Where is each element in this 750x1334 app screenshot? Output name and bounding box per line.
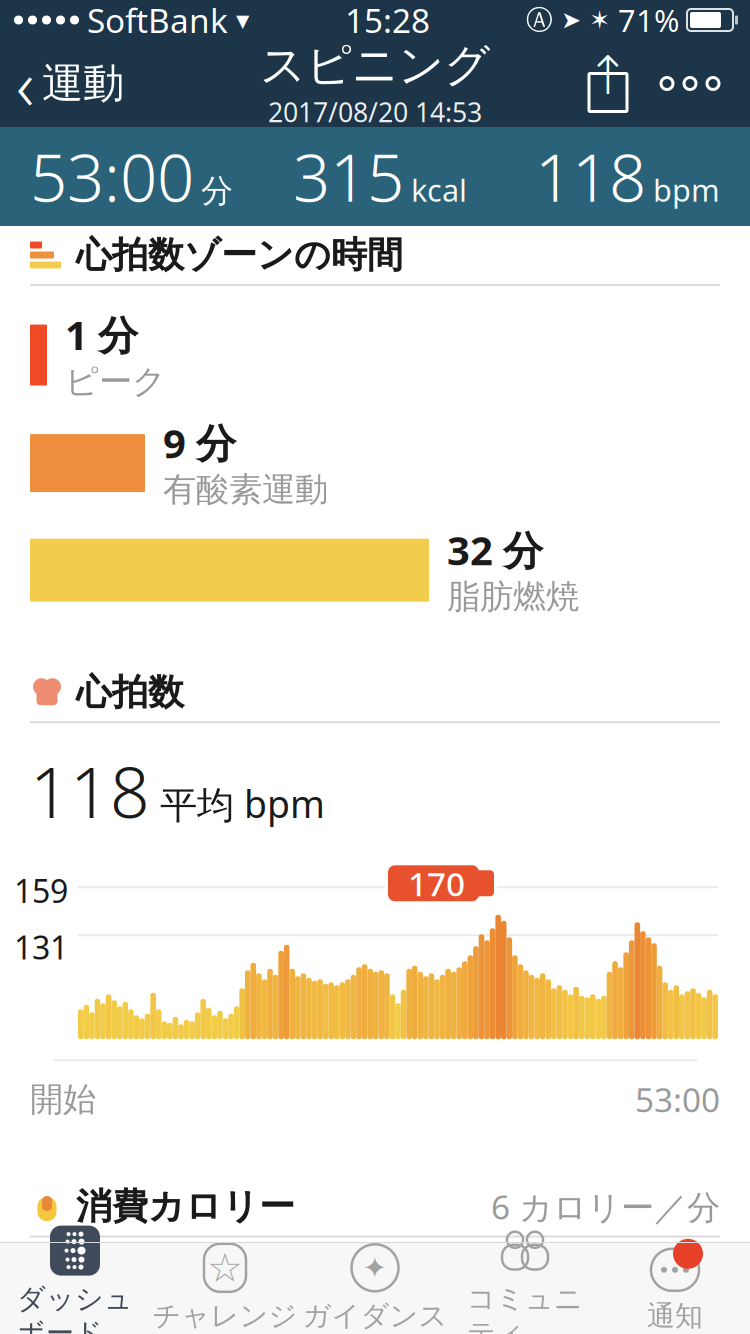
staticText: コミュニティ (467, 1282, 583, 1334)
staticText: bpm (653, 170, 720, 210)
staticText: 32 分 (447, 523, 543, 576)
button[interactable]: 共有 (578, 51, 638, 115)
staticText: 心拍数 (76, 670, 184, 714)
staticText: スピニング (260, 37, 490, 93)
staticText: 6 カロリー／分 (491, 1184, 720, 1229)
staticText: 71% (618, 0, 679, 40)
staticText: 平均 (160, 783, 234, 829)
staticText: 118 (535, 133, 646, 220)
staticText: ガイダンス (302, 1299, 447, 1333)
staticText: 2017/08/20 14:53 (268, 94, 482, 129)
button[interactable]: ‹ (0, 27, 124, 140)
staticText: kcal (411, 170, 467, 210)
staticText: 消費カロリー (76, 1184, 295, 1229)
staticText: 心拍数ゾーンの時間 (76, 233, 403, 277)
button[interactable]: コミュニティ (450, 1242, 600, 1334)
staticText: ➤ (561, 6, 581, 34)
staticText: 315 (30, 1259, 150, 1334)
staticText: 118 (30, 745, 150, 837)
button[interactable]: ☆ (150, 1242, 300, 1334)
staticText: 9 分 (163, 416, 236, 469)
staticText: 315 (293, 133, 404, 220)
staticText: 通知 (647, 1299, 703, 1333)
button[interactable]: 通知 (600, 1242, 750, 1334)
button[interactable]: その他 (638, 51, 742, 115)
button[interactable]: ✦ (300, 1242, 450, 1334)
staticText: ✦ (362, 1251, 387, 1284)
staticText: ▾ (236, 5, 249, 35)
staticText: Ⓐ (526, 4, 553, 36)
staticText: 1 分 (65, 308, 138, 361)
staticText: 53:00 (30, 133, 194, 220)
staticText: 53:00 (635, 1077, 720, 1122)
staticText: 脂肪燃焼 (447, 576, 579, 617)
button[interactable]: ダッシュボード (0, 1242, 150, 1334)
staticText: ピーク (65, 361, 166, 402)
staticText: ↑ (585, 45, 630, 106)
staticText: 運動 (42, 58, 124, 109)
staticText: ✶ (589, 6, 610, 34)
staticText: SoftBank (87, 0, 228, 42)
staticText: ダッシュボード (17, 1282, 133, 1334)
staticText: 有酸素運動 (163, 469, 328, 510)
staticText: 159 (14, 869, 68, 912)
staticText: チャレンジ (152, 1299, 297, 1333)
staticText: ‹ (16, 37, 34, 130)
staticText: 131 (14, 926, 68, 968)
staticText: カロリー (160, 1297, 311, 1334)
staticText: 分 (201, 171, 233, 211)
staticText: bpm (244, 779, 325, 828)
staticText: 15:28 (345, 0, 430, 42)
staticText: ☆ (207, 1245, 243, 1290)
staticText: 開始 (30, 1079, 96, 1120)
staticText: 170 (408, 861, 465, 905)
